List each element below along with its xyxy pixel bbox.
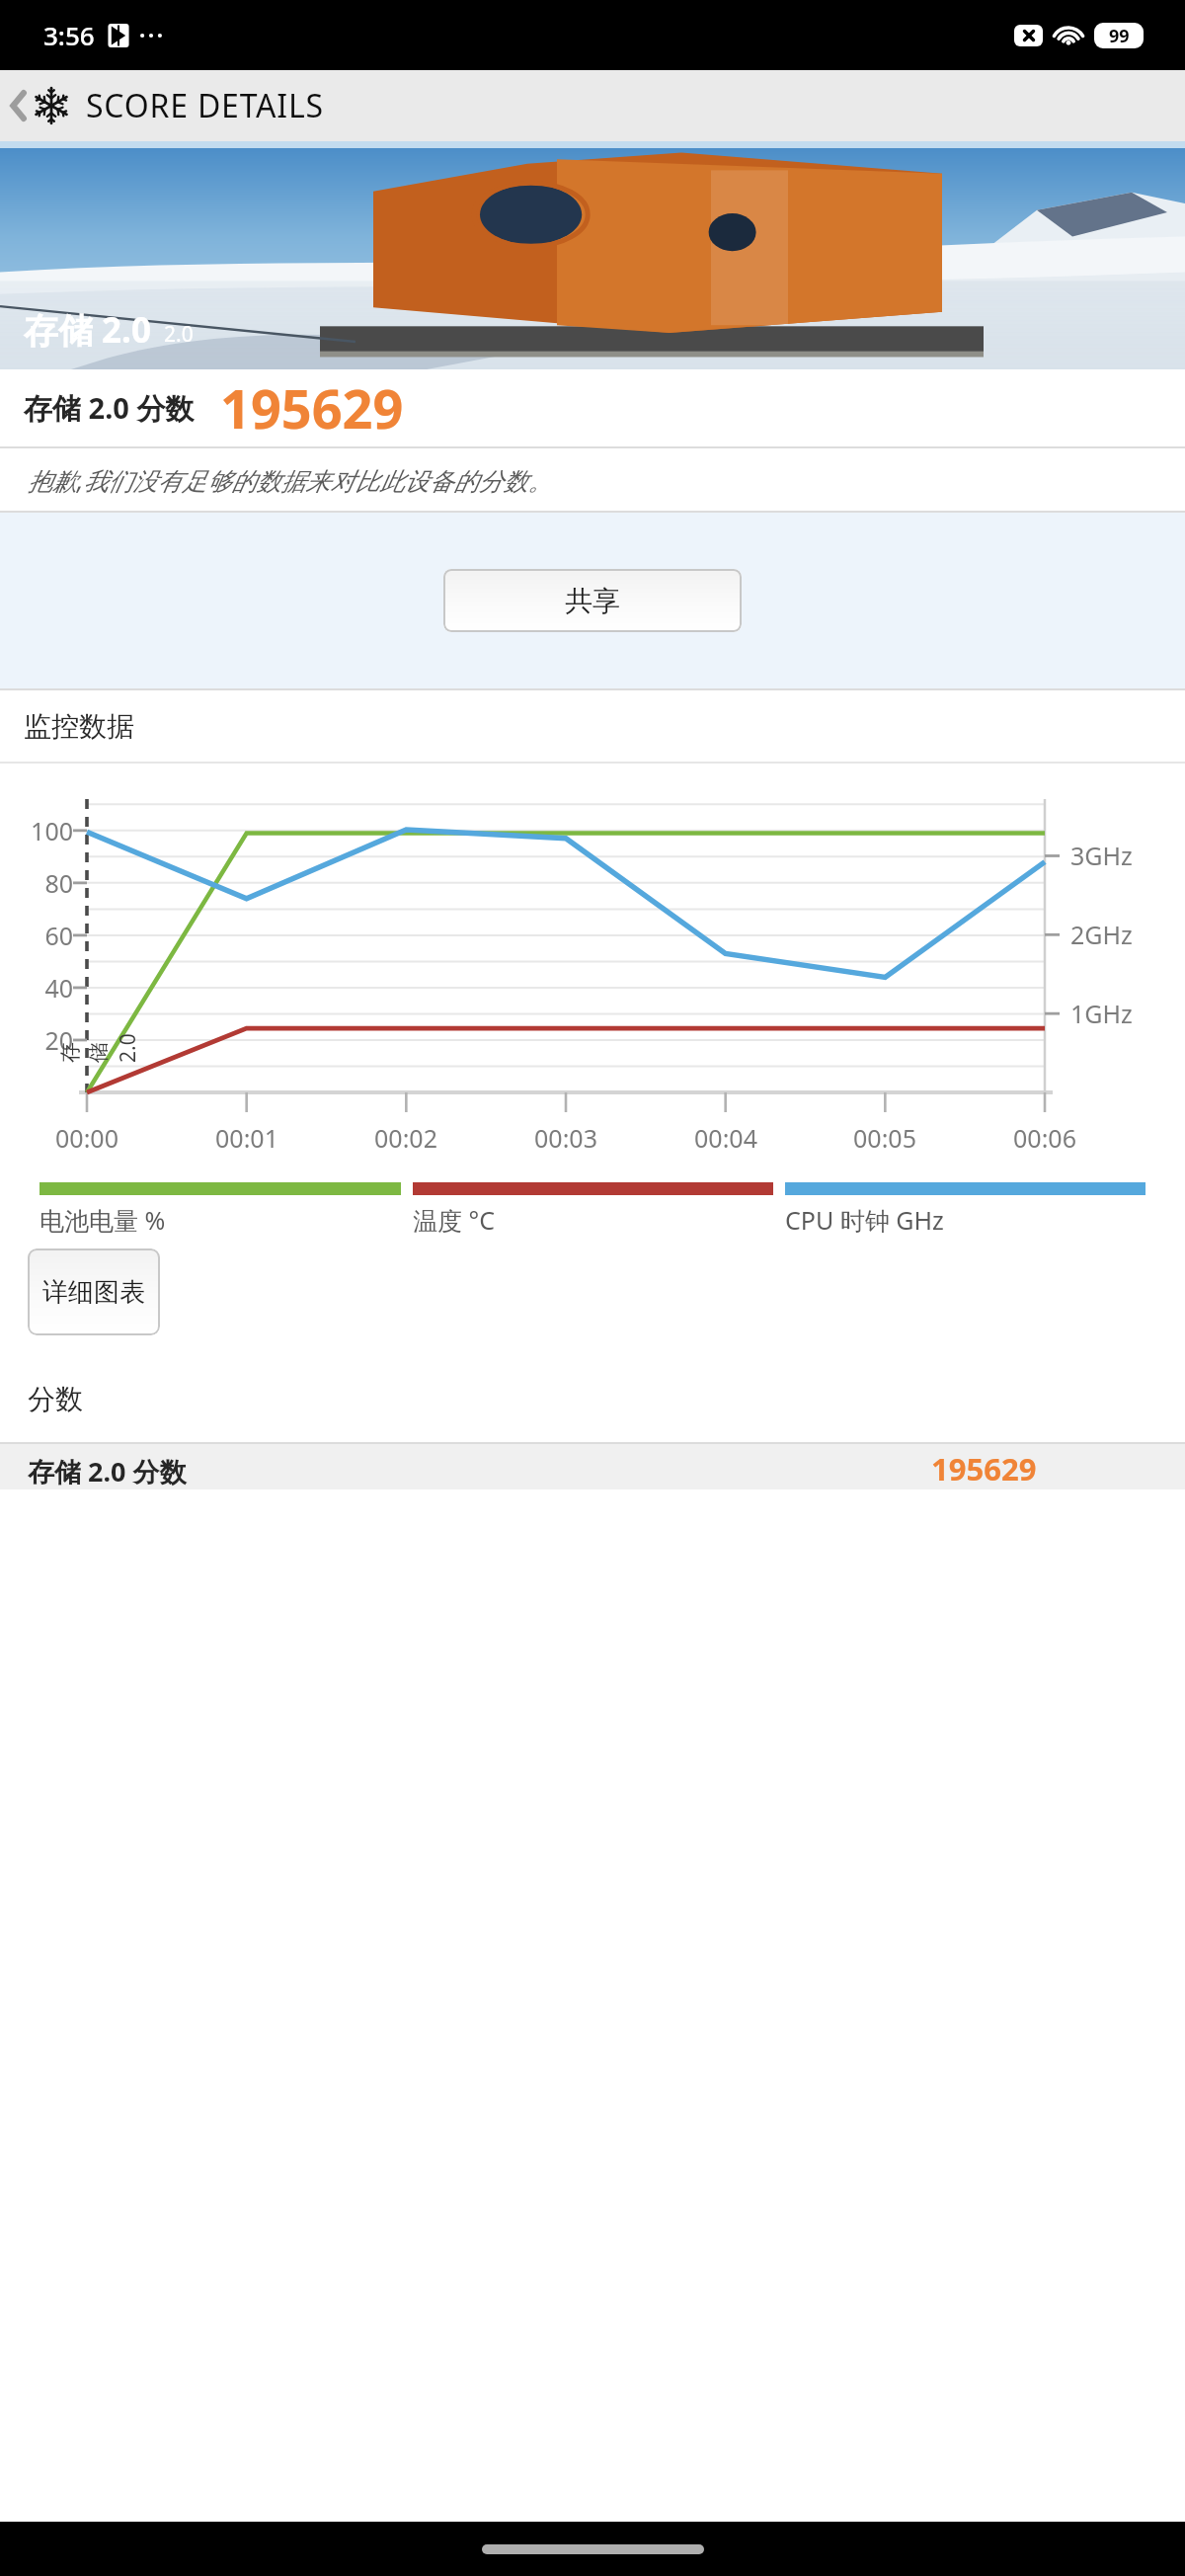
staticText: 存储 2.0: [24, 306, 151, 354]
staticText: 100: [12, 814, 73, 847]
staticText: 00:05: [835, 1121, 934, 1155]
staticText: 监控数据: [24, 709, 134, 744]
staticText: 存储 2.0 分数: [24, 388, 195, 428]
staticText: 00:01: [197, 1121, 296, 1155]
staticText: 共享: [565, 584, 620, 618]
staticText: 00:02: [356, 1121, 455, 1155]
staticText: 00:04: [676, 1121, 775, 1155]
staticText: 存储 2.0: [57, 1033, 142, 1063]
button[interactable]: 详细图表: [28, 1248, 160, 1335]
button[interactable]: Back: [0, 84, 336, 127]
staticText: 分数: [28, 1382, 83, 1416]
staticText: 00:00: [38, 1121, 136, 1155]
staticText: SCORE DETAILS: [86, 84, 324, 127]
staticText: 存储 2.0 分数: [28, 1453, 187, 1489]
staticText: 00:03: [516, 1121, 615, 1155]
staticText: 195629: [220, 371, 404, 444]
staticText: CPU 时钟 GHz: [785, 1203, 944, 1237]
staticText: 2GHz: [1070, 918, 1133, 951]
staticText: 2.0: [164, 320, 194, 349]
staticText: 3:56: [43, 18, 95, 52]
staticText: 20: [12, 1023, 73, 1057]
staticText: 99: [1109, 24, 1130, 48]
staticText: 3GHz: [1070, 839, 1133, 872]
staticText: 详细图表: [42, 1276, 145, 1309]
staticText: 80: [12, 866, 73, 900]
staticText: 抱歉,我们没有足够的数据来对比此设备的分数。: [28, 463, 553, 497]
staticText: 1GHz: [1070, 997, 1133, 1030]
staticText: 195629: [931, 1448, 1037, 1489]
staticText: 60: [12, 919, 73, 952]
staticText: 00:06: [995, 1121, 1094, 1155]
staticText: 40: [12, 971, 73, 1005]
button[interactable]: 共享: [443, 569, 742, 632]
staticText: 电池电量 %: [39, 1203, 166, 1237]
staticText: 温度 °C: [413, 1203, 496, 1237]
